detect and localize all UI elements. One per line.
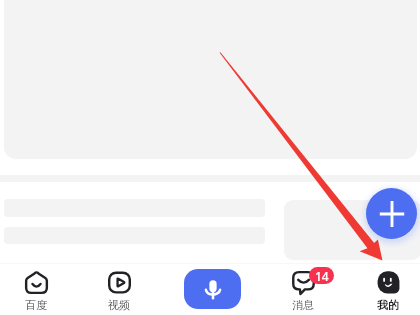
button[interactable] — [284, 200, 420, 260]
staticText: 我的 — [377, 298, 399, 312]
button[interactable]: 我的 — [358, 264, 418, 312]
staticText: 百度 — [25, 298, 47, 312]
button[interactable]: 消息 — [273, 264, 333, 312]
button[interactable]: 视频 — [89, 264, 149, 312]
staticText: 视频 — [108, 298, 130, 312]
button[interactable]: Add — [366, 188, 417, 239]
staticText: 消息 — [292, 298, 314, 312]
staticText: 14 — [315, 268, 329, 284]
button[interactable]: 百度 — [6, 264, 66, 312]
button[interactable]: Voice search — [184, 269, 241, 309]
button[interactable] — [4, 0, 417, 159]
